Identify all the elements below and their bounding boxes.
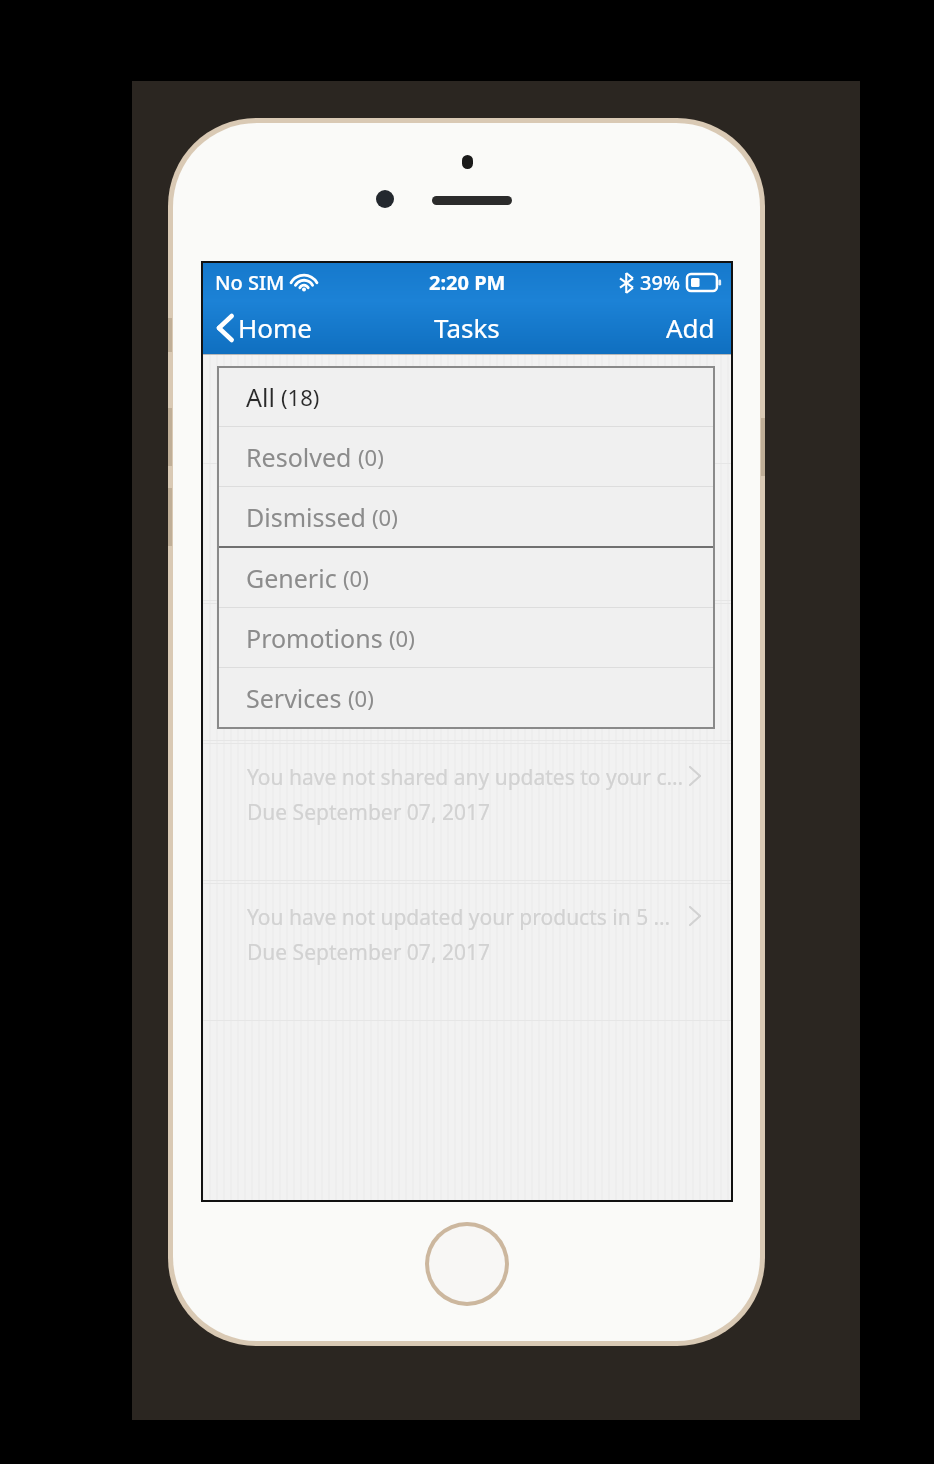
button[interactable]: Dismissed — [218, 487, 714, 546]
staticText: (0) — [389, 623, 415, 653]
staticText: Due September 07, 2017 — [247, 658, 491, 687]
staticText: 2:20 PM — [429, 269, 506, 296]
staticText: (0) — [348, 683, 374, 713]
staticText: Due September 07, 2017 — [247, 518, 491, 547]
staticText: All — [246, 380, 275, 414]
staticText: Home — [238, 310, 312, 345]
button[interactable]: All — [218, 367, 714, 426]
staticText: Due September 07, 2017 — [247, 798, 491, 827]
staticText: You have not updated your products in 5 … — [247, 623, 689, 652]
button[interactable]: Promotions — [218, 608, 714, 667]
staticText: (18) — [281, 382, 320, 412]
staticText: Promotions — [246, 621, 383, 655]
staticText: (0) — [358, 442, 384, 472]
button[interactable]: Home button — [425, 1222, 509, 1306]
button[interactable]: You have not updated your products in 5 … — [203, 603, 731, 741]
staticText: Add — [666, 310, 715, 345]
button[interactable]: You have not shared any updates to your … — [203, 463, 731, 601]
button[interactable]: Home — [203, 304, 326, 351]
button[interactable]: Add — [650, 304, 731, 351]
button[interactable]: Generic — [218, 548, 714, 607]
button[interactable]: You have not shared any updates to your … — [203, 743, 731, 881]
button[interactable]: Resolved — [218, 427, 714, 486]
staticText: Tasks — [434, 310, 500, 345]
staticText: You have not shared any updates to your … — [247, 763, 689, 792]
staticText: You have not updated your products in 5 … — [247, 903, 689, 932]
staticText: (0) — [372, 502, 398, 532]
staticText: 39% — [640, 269, 680, 296]
staticText: (0) — [343, 563, 369, 593]
staticText: Generic — [246, 561, 337, 595]
staticText: Services — [246, 681, 342, 715]
staticText: You have not shared any updates to your … — [247, 483, 689, 512]
staticText: No SIM — [215, 269, 285, 296]
staticText: Due September 07, 2017 — [247, 938, 491, 967]
button[interactable]: Services — [218, 668, 714, 727]
staticText: Dismissed — [246, 500, 366, 534]
button[interactable]: You have not updated your products in 5 … — [203, 883, 731, 1021]
staticText: Resolved — [246, 440, 352, 474]
